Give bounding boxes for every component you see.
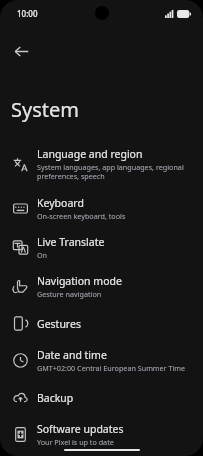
staticText: GMT+02:00 Central European Summer Time [37, 363, 186, 373]
button[interactable]: Gestures [0, 306, 203, 341]
button[interactable]: Back [4, 34, 38, 68]
staticText: System [11, 96, 79, 123]
staticText: Keyboard [37, 196, 84, 210]
staticText: System languages, app languages, regiona… [37, 162, 184, 182]
button[interactable]: Live Translate [0, 228, 203, 267]
staticText: On [37, 250, 48, 260]
staticText: Date and time [37, 348, 107, 362]
staticText: Language and region [37, 147, 143, 161]
staticText: Navigation mode [37, 274, 122, 288]
button[interactable]: Navigation mode [0, 267, 203, 306]
button[interactable]: Keyboard [0, 189, 203, 228]
staticText: Backup [37, 391, 74, 405]
button[interactable]: Date and time [0, 341, 203, 380]
staticText: On-screen keyboard, tools [37, 211, 126, 221]
staticText: Live Translate [37, 235, 105, 249]
staticText: Software updates [37, 422, 124, 436]
button[interactable]: Backup [0, 380, 203, 415]
staticText: 10:00 [17, 8, 38, 19]
button[interactable]: Software updates [0, 415, 203, 454]
button[interactable]: Rules [0, 454, 203, 456]
staticText: Your Pixel is up to date [37, 437, 114, 447]
button[interactable]: Language and region [0, 140, 203, 189]
staticText: Gestures [37, 317, 81, 331]
staticText: Gesture navigation [37, 289, 102, 299]
